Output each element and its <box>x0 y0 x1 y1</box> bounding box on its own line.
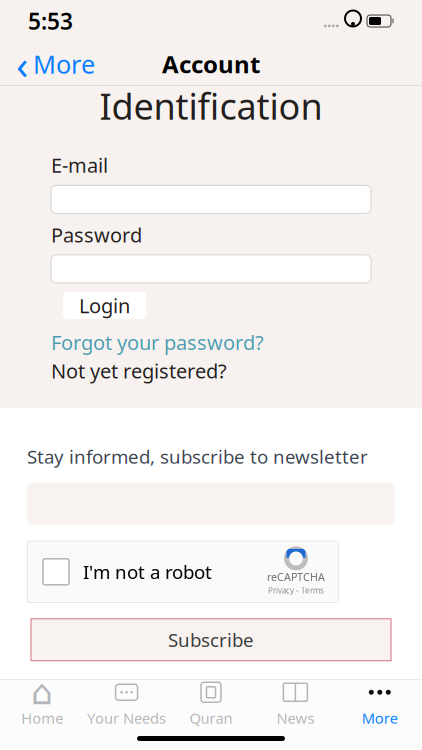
button[interactable]: Quran <box>169 680 253 728</box>
staticText: Password <box>51 221 142 248</box>
staticText: 5:53 <box>28 6 73 36</box>
staticText: E-mail <box>51 152 108 178</box>
staticText: ‹ <box>16 37 28 90</box>
staticText: Not yet registered? <box>51 357 227 384</box>
staticText: Home <box>21 708 63 728</box>
staticText: More <box>362 708 398 728</box>
staticText: ⌂ <box>31 673 53 712</box>
button[interactable]: ⌂ <box>0 680 84 728</box>
staticText: reCAPTCHA <box>267 570 325 584</box>
staticText: Quran <box>189 708 232 728</box>
button[interactable]: Forgot your password? <box>51 329 264 355</box>
staticText: More <box>33 47 95 81</box>
staticText: .... <box>323 10 339 32</box>
button[interactable]: Subscribe <box>31 619 391 661</box>
staticText: Privacy - Terms <box>268 585 324 596</box>
button[interactable]: ‹ <box>4 42 107 86</box>
button[interactable]: Login <box>63 292 146 319</box>
staticText: Identification <box>99 82 322 130</box>
staticText: News <box>276 708 314 728</box>
staticText: Subscribe <box>168 627 254 652</box>
staticText: Login <box>79 292 130 319</box>
button[interactable]: News <box>253 680 338 728</box>
button[interactable]: Your Needs <box>84 680 169 728</box>
staticText: Account <box>162 48 260 80</box>
staticText: Your Needs <box>87 708 166 728</box>
staticText: Stay informed, subscribe to newsletter <box>27 444 368 469</box>
staticText: Forgot your password? <box>51 329 264 355</box>
button[interactable]: More <box>338 680 422 728</box>
staticText: I'm not a robot <box>83 559 212 584</box>
